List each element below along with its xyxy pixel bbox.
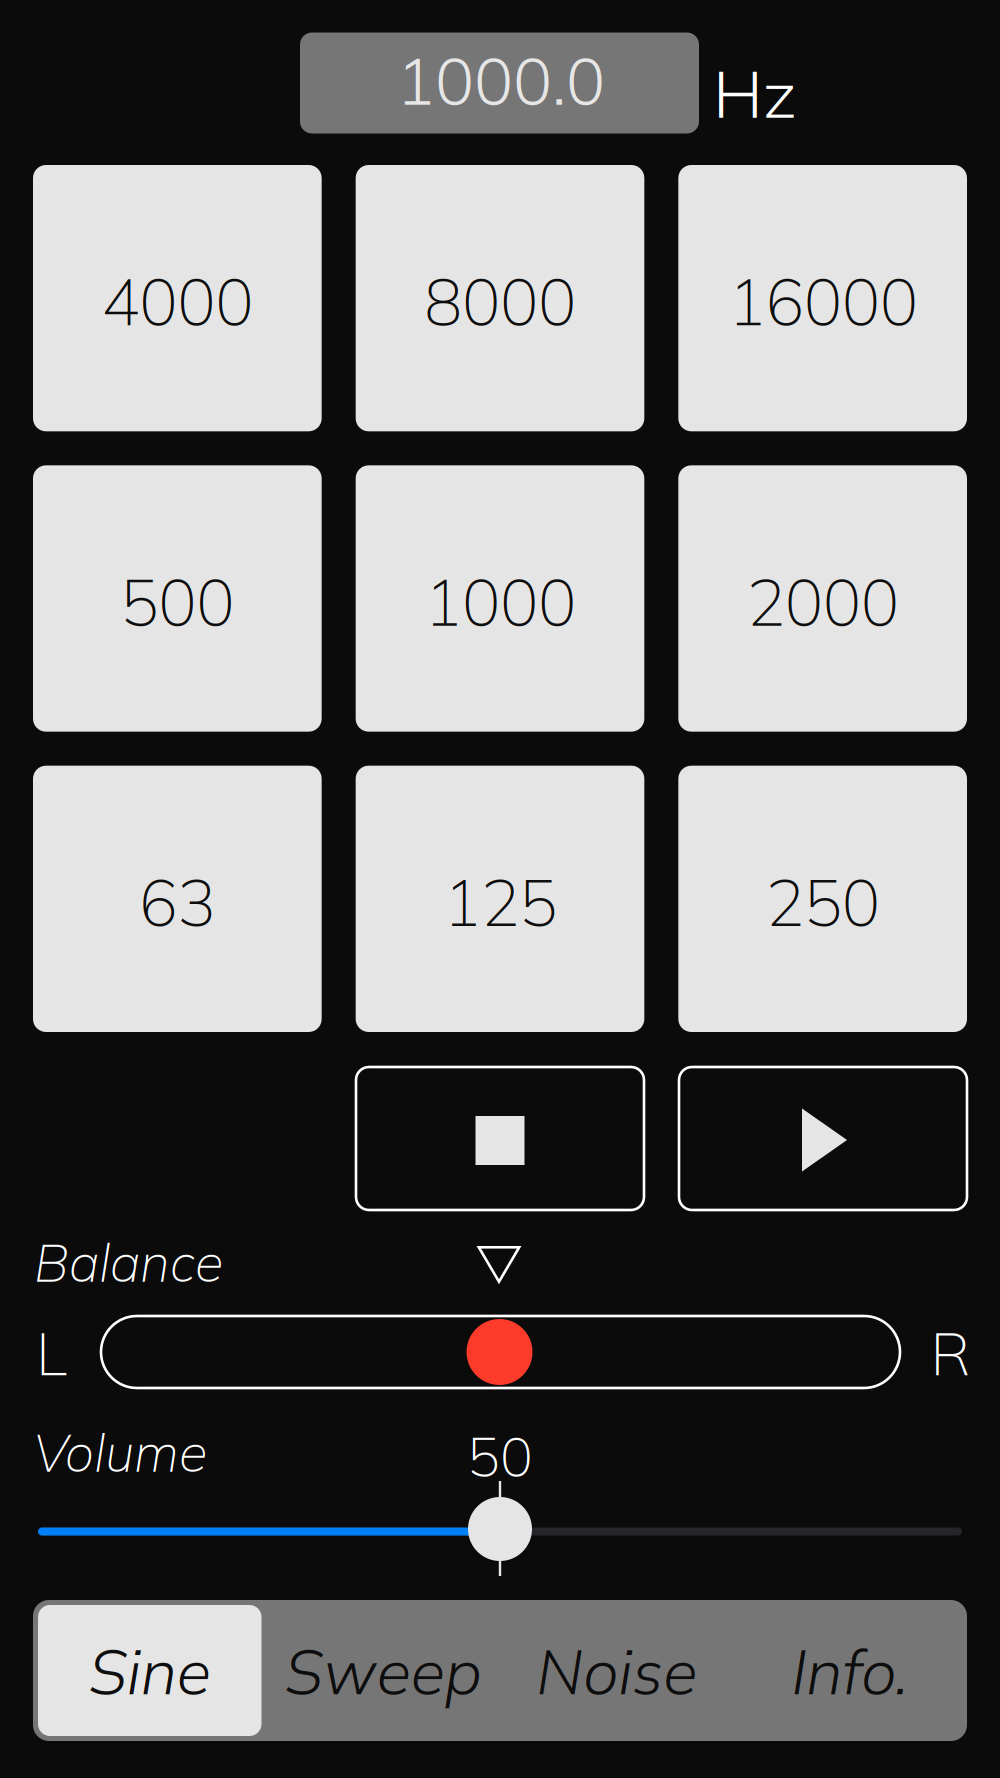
button[interactable]: Sweep [266, 1600, 500, 1741]
button[interactable]: 4000 [33, 165, 322, 431]
staticText: R [930, 1316, 970, 1390]
button[interactable]: Noise [500, 1600, 733, 1741]
staticText: 63 [139, 862, 215, 942]
button[interactable]: 1000 [356, 465, 644, 732]
staticText: 4000 [101, 261, 253, 341]
staticText: Sine [89, 1631, 211, 1710]
staticText: 1000 [424, 561, 576, 642]
staticText: Sweep [285, 1631, 482, 1710]
button[interactable]: 8000 [356, 165, 644, 431]
button[interactable]: Sine [33, 1600, 266, 1741]
button[interactable]: Play [679, 1067, 967, 1210]
staticText: 8000 [424, 261, 576, 341]
staticText: Noise [536, 1631, 697, 1710]
staticText: 125 [443, 862, 557, 942]
staticText: 16000 [728, 261, 918, 341]
button[interactable]: Stop [356, 1067, 644, 1210]
staticText: Balance [34, 1229, 223, 1295]
staticText: 500 [120, 561, 234, 642]
button[interactable]: 16000 [678, 165, 967, 431]
staticText: Volume [33, 1419, 207, 1485]
button[interactable]: 63 [33, 766, 322, 1032]
staticText: 50 [467, 1422, 533, 1490]
staticText: 1000.0 [396, 39, 605, 121]
staticText: Info. [791, 1631, 909, 1710]
staticText: L [36, 1316, 67, 1390]
staticText: 250 [766, 862, 880, 942]
button[interactable]: 500 [33, 465, 322, 732]
button[interactable]: 125 [356, 766, 644, 1032]
button[interactable]: 2000 [678, 465, 967, 732]
button[interactable]: Info. [733, 1600, 967, 1741]
button[interactable]: 250 [678, 766, 967, 1032]
staticText: 2000 [747, 561, 899, 642]
staticText: Hz [713, 52, 797, 134]
